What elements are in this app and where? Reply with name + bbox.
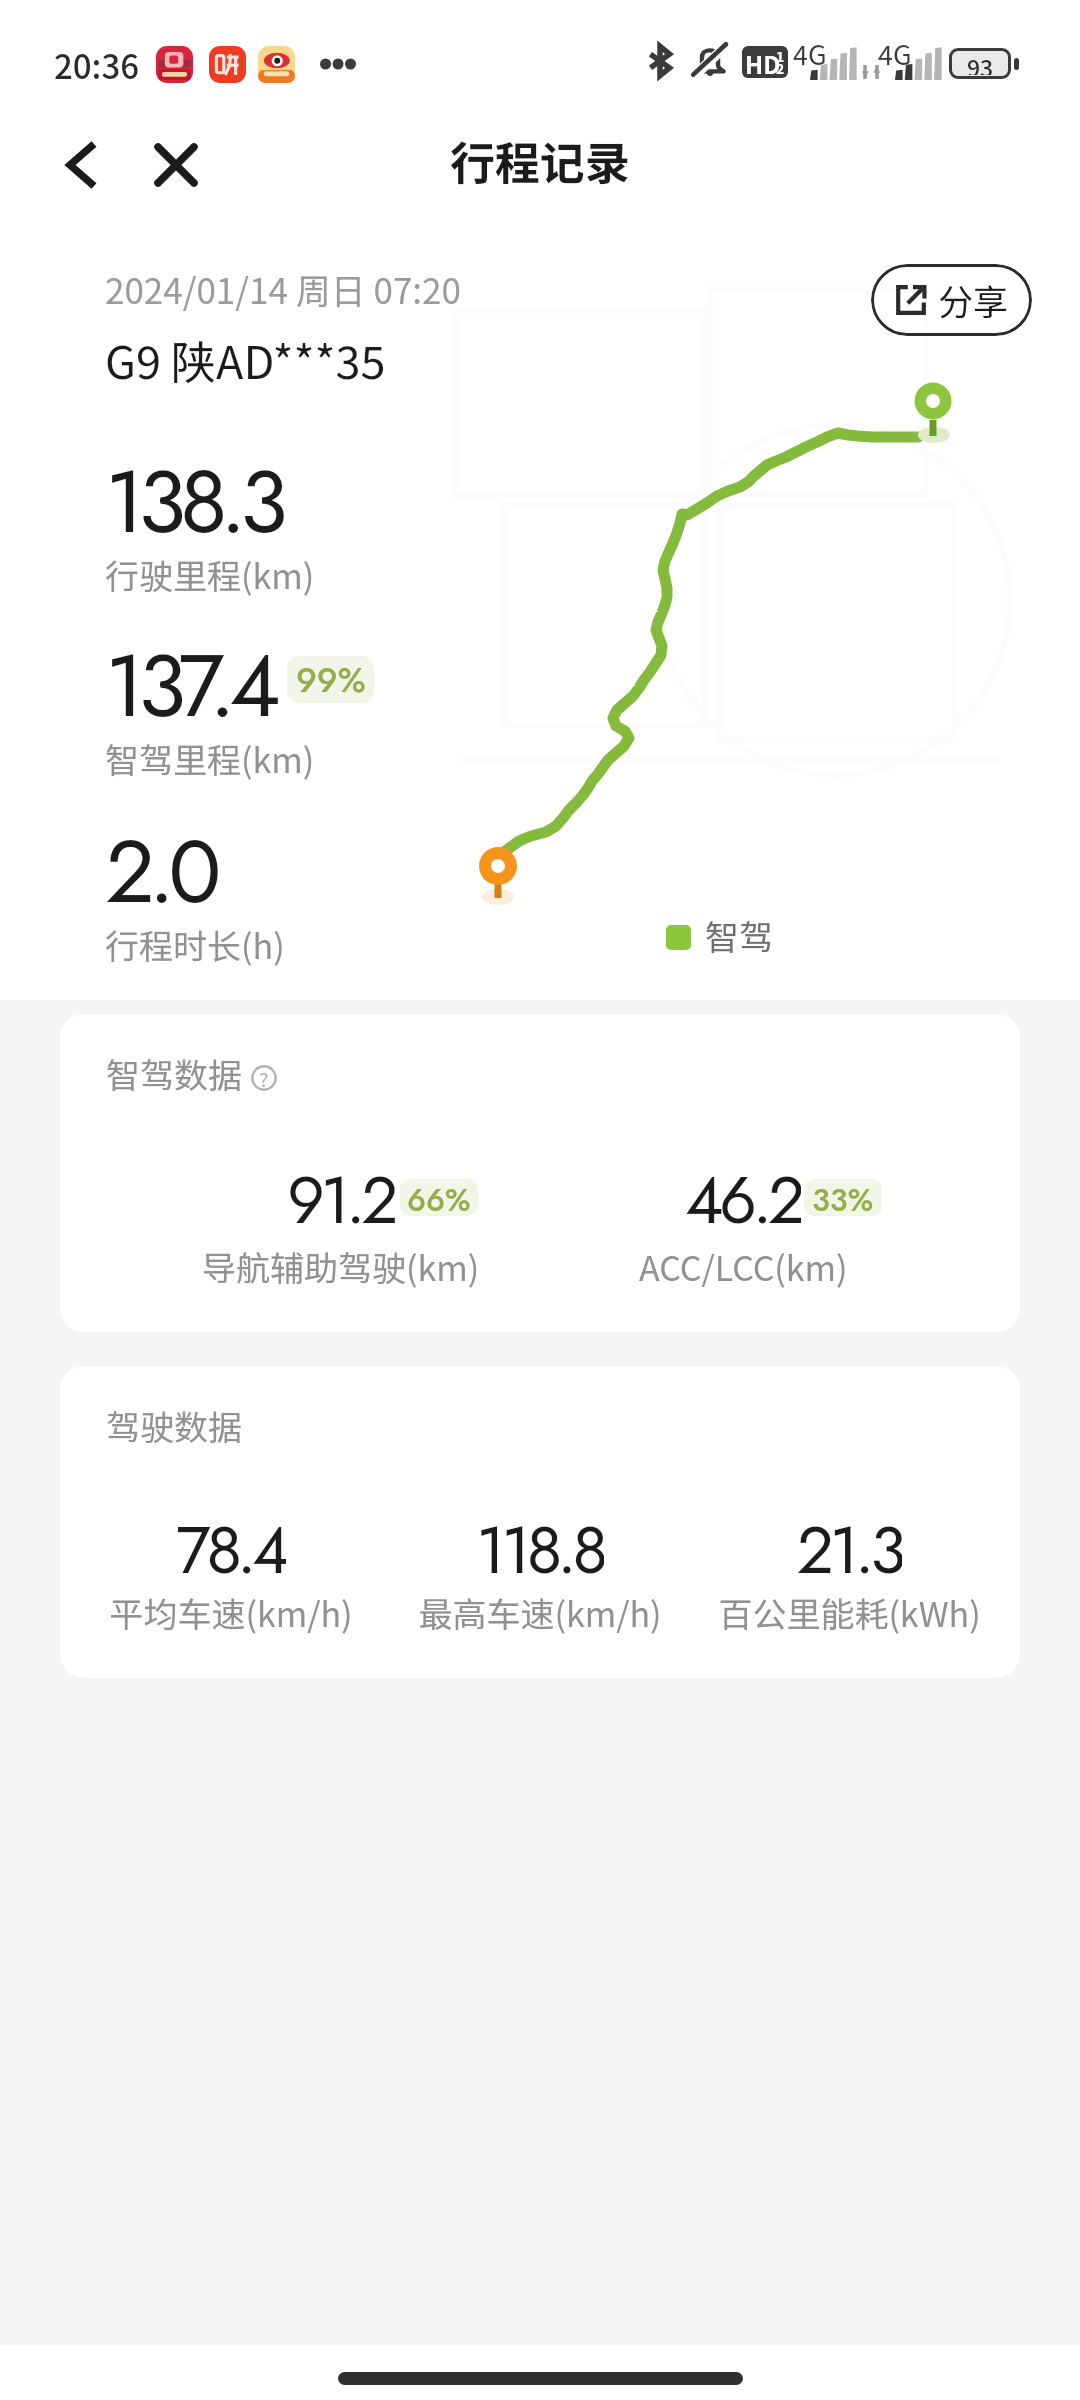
staticText: 驾驶数据	[106, 1401, 242, 1450]
staticText: 分享	[938, 274, 1009, 325]
staticText: 46.2	[685, 1152, 801, 1242]
staticText: 20:36	[54, 41, 140, 89]
staticText: 智驾数据	[106, 1049, 242, 1098]
staticText: 91.2	[287, 1152, 395, 1242]
staticText: 66%	[407, 1179, 471, 1215]
staticText: 21.3	[796, 1502, 902, 1592]
staticText: 行程记录	[450, 128, 631, 193]
staticText: 33%	[812, 1179, 874, 1215]
staticText: 4G	[793, 34, 827, 73]
staticText: 导航辅助驾驶(km)	[202, 1242, 480, 1291]
staticText: ?	[259, 1064, 269, 1090]
staticText: 百公里能耗(kWh)	[718, 1588, 981, 1637]
staticText: 1	[776, 46, 785, 66]
button[interactable]: 分享	[871, 264, 1032, 336]
staticText: 2	[776, 58, 785, 78]
staticText: 2.0	[105, 808, 215, 935]
staticText: 智驾	[705, 911, 773, 960]
staticText: 行驶里程(km)	[105, 550, 315, 599]
staticText: 137.4	[105, 622, 274, 749]
staticText: 2024/01/14 周日 07:20	[105, 263, 461, 314]
staticText: 行程时长(h)	[105, 920, 285, 969]
staticText: 最高车速(km/h)	[418, 1588, 662, 1637]
staticText: 平均车速(km/h)	[109, 1588, 353, 1637]
staticText: 118.8	[476, 1502, 604, 1592]
staticText: ACC/LCC(km)	[639, 1242, 848, 1291]
button[interactable]: Back	[42, 125, 122, 205]
button[interactable]: Close	[136, 125, 216, 205]
button[interactable]: About smart-driving data	[251, 1065, 277, 1091]
staticText: 4G	[878, 34, 912, 73]
staticText: 138.3	[105, 438, 282, 565]
staticText: 99%	[296, 656, 366, 703]
staticText: 93	[967, 51, 994, 75]
staticText: 78.4	[176, 1502, 286, 1592]
staticText: HD	[745, 46, 781, 78]
staticText: 智驾里程(km)	[105, 734, 315, 783]
staticText: G9 陕AD***35	[105, 327, 386, 392]
